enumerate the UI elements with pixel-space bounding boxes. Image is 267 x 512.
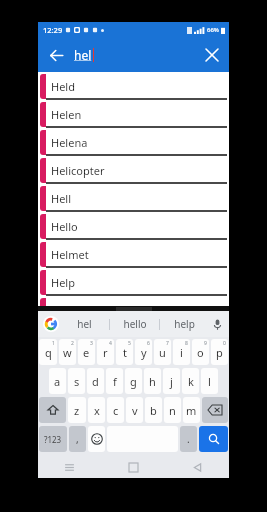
- button[interactable]: r: [97, 339, 114, 365]
- button[interactable]: Home: [101, 456, 165, 478]
- staticText: m: [186, 403, 197, 418]
- button[interactable]: a: [49, 368, 66, 394]
- button[interactable]: Clear search: [199, 42, 225, 68]
- staticText: i: [180, 345, 183, 360]
- staticText: x: [94, 403, 100, 418]
- staticText: t: [123, 345, 127, 360]
- button[interactable]: l: [201, 368, 218, 394]
- button[interactable]: Recents: [38, 456, 101, 478]
- button[interactable]: Hell: [38, 184, 229, 212]
- staticText: Helper: [51, 303, 86, 318]
- staticText: z: [74, 403, 80, 418]
- button[interactable]: h: [144, 368, 161, 394]
- staticText: hello: [123, 317, 147, 331]
- button[interactable]: z: [68, 397, 86, 423]
- button[interactable]: Helmet: [38, 240, 229, 268]
- button[interactable]: e: [78, 339, 95, 365]
- button[interactable]: x: [88, 397, 105, 423]
- button[interactable]: d: [87, 368, 104, 394]
- staticText: j: [170, 374, 173, 389]
- staticText: Helmet: [51, 247, 89, 262]
- button[interactable]: Back: [42, 41, 70, 69]
- button[interactable]: i: [173, 339, 190, 365]
- staticText: hel: [74, 47, 92, 63]
- staticText: Hell: [51, 191, 72, 206]
- staticText: f: [113, 374, 117, 389]
- staticText: e: [83, 345, 90, 360]
- staticText: 1: [52, 340, 55, 347]
- button[interactable]: Google: [42, 315, 60, 333]
- button[interactable]: u: [154, 339, 171, 365]
- button[interactable]: ?123: [39, 426, 67, 452]
- button[interactable]: ,: [69, 426, 86, 452]
- button[interactable]: t: [116, 339, 133, 365]
- staticText: 12:29: [43, 25, 63, 35]
- button[interactable]: v: [126, 397, 143, 423]
- button[interactable]: Helicopter: [38, 156, 229, 184]
- staticText: h: [149, 374, 156, 389]
- staticText: v: [132, 403, 138, 418]
- staticText: 0: [223, 340, 226, 347]
- button[interactable]: p: [211, 339, 228, 365]
- staticText: Helen: [51, 107, 82, 122]
- button[interactable]: Held: [38, 72, 229, 100]
- button[interactable]: Hello: [38, 212, 229, 240]
- staticText: help: [174, 317, 195, 331]
- staticText: 2: [71, 340, 74, 347]
- staticText: .: [187, 432, 190, 446]
- staticText: 5: [128, 340, 131, 347]
- staticText: w: [63, 345, 72, 360]
- staticText: s: [74, 374, 80, 389]
- button[interactable]: q: [39, 339, 57, 365]
- button[interactable]: hel: [60, 311, 109, 337]
- button[interactable]: Helen: [38, 100, 229, 128]
- staticText: q: [45, 345, 52, 360]
- staticText: ,: [76, 432, 79, 446]
- button[interactable]: Help: [38, 268, 229, 296]
- button[interactable]: Helper: [38, 296, 229, 324]
- button[interactable]: c: [107, 397, 124, 423]
- staticText: 66%: [207, 26, 219, 34]
- staticText: Held: [51, 79, 75, 94]
- button[interactable]: m: [183, 397, 200, 423]
- staticText: 9: [204, 340, 207, 347]
- button[interactable]: b: [145, 397, 162, 423]
- button[interactable]: Back: [165, 456, 229, 478]
- button[interactable]: g: [125, 368, 142, 394]
- staticText: y: [141, 345, 147, 360]
- staticText: 7: [166, 340, 169, 347]
- button[interactable]: Emoji: [88, 426, 105, 452]
- button[interactable]: w: [59, 339, 76, 365]
- staticText: Help: [51, 275, 75, 290]
- button[interactable]: k: [182, 368, 199, 394]
- staticText: d: [92, 374, 99, 389]
- button[interactable]: y: [135, 339, 152, 365]
- staticText: k: [188, 374, 194, 389]
- staticText: u: [159, 345, 166, 360]
- staticText: l: [208, 374, 211, 389]
- staticText: Helicopter: [51, 163, 105, 178]
- staticText: c: [113, 403, 119, 418]
- button[interactable]: .: [180, 426, 197, 452]
- button[interactable]: Backspace: [202, 397, 228, 423]
- button[interactable]: j: [163, 368, 180, 394]
- staticText: n: [169, 403, 176, 418]
- staticText: g: [130, 374, 137, 389]
- button[interactable]: hello: [110, 311, 159, 337]
- staticText: Helena: [51, 135, 88, 150]
- button[interactable]: help: [160, 311, 209, 337]
- button[interactable]: o: [192, 339, 209, 365]
- button[interactable]: f: [106, 368, 123, 394]
- button[interactable]: n: [164, 397, 181, 423]
- button[interactable]: s: [68, 368, 85, 394]
- button[interactable]: Voice input: [209, 316, 225, 332]
- staticText: Hello: [51, 219, 78, 234]
- button[interactable]: Shift: [39, 397, 66, 423]
- staticText: ?123: [44, 434, 62, 445]
- staticText: p: [216, 345, 223, 360]
- button[interactable]: Search: [199, 426, 228, 452]
- staticText: b: [150, 403, 157, 418]
- button[interactable]: Helena: [38, 128, 229, 156]
- staticText: o: [197, 345, 204, 360]
